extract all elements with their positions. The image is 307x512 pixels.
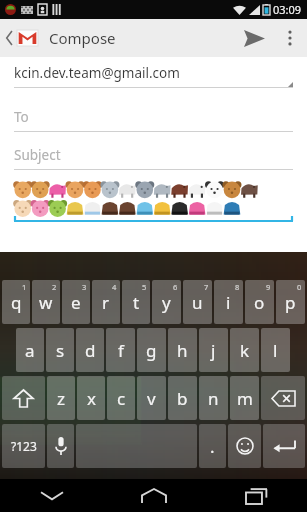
button[interactable]: m <box>230 376 259 420</box>
staticText: o <box>254 291 265 314</box>
staticText: d <box>85 339 96 362</box>
button[interactable]: y <box>152 280 181 324</box>
staticText: p <box>285 291 296 314</box>
staticText: b <box>177 387 188 410</box>
staticText: c <box>117 387 126 410</box>
button[interactable] <box>14 181 293 223</box>
staticText: Compose <box>49 28 116 48</box>
button[interactable]: k <box>230 328 259 372</box>
button[interactable]: a <box>16 328 44 372</box>
button[interactable]: p <box>276 280 305 324</box>
staticText: e <box>71 291 81 314</box>
staticText: t <box>133 291 140 314</box>
staticText: 9 <box>266 282 271 292</box>
button[interactable]: Voice input <box>47 424 74 468</box>
staticText: 0 <box>297 282 302 292</box>
staticText: q <box>11 291 22 314</box>
button[interactable]: Period <box>199 424 226 468</box>
button[interactable]: g <box>137 328 166 372</box>
button[interactable]: z <box>47 376 75 420</box>
staticText: kcin.dev.team@gmail.com <box>14 64 180 82</box>
button[interactable]: kcin.dev.team@gmail.com <box>14 64 293 94</box>
staticText: i <box>226 291 231 314</box>
button[interactable]: w <box>32 280 60 324</box>
staticText: l <box>273 339 278 362</box>
staticText: x <box>87 387 96 410</box>
staticText: r <box>102 291 110 314</box>
button[interactable]: i <box>214 280 243 324</box>
button[interactable]: v <box>137 376 166 420</box>
button[interactable]: Enter <box>263 424 305 468</box>
staticText: y <box>162 291 171 314</box>
button[interactable]: Hide keyboard <box>0 479 103 512</box>
button[interactable]: q <box>2 280 30 324</box>
button[interactable]: j <box>199 328 228 372</box>
button[interactable]: Send <box>232 19 276 57</box>
staticText: u <box>192 291 203 314</box>
staticText: a <box>25 339 35 362</box>
staticText: g <box>146 339 157 362</box>
staticText: h <box>177 339 188 362</box>
button[interactable]: Symbols <box>2 424 45 468</box>
staticText: z <box>57 387 65 410</box>
staticText: 1 <box>22 282 27 292</box>
button[interactable]: Subject <box>14 146 293 170</box>
button[interactable]: x <box>77 376 105 420</box>
button[interactable]: o <box>245 280 274 324</box>
button[interactable]: t <box>122 280 150 324</box>
button[interactable]: c <box>107 376 135 420</box>
button[interactable]: Emoji <box>228 424 261 468</box>
button[interactable]: b <box>168 376 197 420</box>
staticText: 6 <box>173 282 178 292</box>
staticText: 5 <box>142 282 147 292</box>
button[interactable]: d <box>76 328 104 372</box>
button[interactable]: h <box>168 328 197 372</box>
staticText: 2 <box>52 282 57 292</box>
button[interactable]: Backspace <box>261 376 305 420</box>
staticText: n <box>208 387 219 410</box>
button[interactable]: r <box>92 280 120 324</box>
staticText: . <box>210 435 215 458</box>
staticText: Subject <box>14 146 61 164</box>
button[interactable]: n <box>199 376 228 420</box>
button[interactable]: l <box>261 328 290 372</box>
button[interactable]: Space <box>76 424 197 468</box>
button[interactable]: e <box>62 280 90 324</box>
staticText: ?123 <box>11 438 37 454</box>
button[interactable]: f <box>106 328 135 372</box>
button[interactable]: Shift <box>2 376 45 420</box>
staticText: v <box>147 387 156 410</box>
staticText: 3 <box>82 282 87 292</box>
staticText: 8 <box>235 282 240 292</box>
staticText: w <box>39 291 53 314</box>
button[interactable]: Navigate up <box>0 19 42 57</box>
button[interactable]: u <box>183 280 212 324</box>
button[interactable]: Recent apps <box>205 479 307 512</box>
staticText: k <box>240 339 250 362</box>
staticText: 03:09 <box>273 2 302 17</box>
button[interactable]: s <box>46 328 74 372</box>
button[interactable]: Home <box>103 479 205 512</box>
staticText: To <box>14 108 29 126</box>
staticText: s <box>56 339 65 362</box>
button[interactable]: More options <box>276 19 304 57</box>
staticText: 4 <box>112 282 117 292</box>
staticText: 7 <box>204 282 209 292</box>
staticText: m <box>237 387 253 410</box>
staticText: j <box>211 339 216 362</box>
button[interactable]: To <box>14 108 293 132</box>
staticText: f <box>118 339 124 362</box>
